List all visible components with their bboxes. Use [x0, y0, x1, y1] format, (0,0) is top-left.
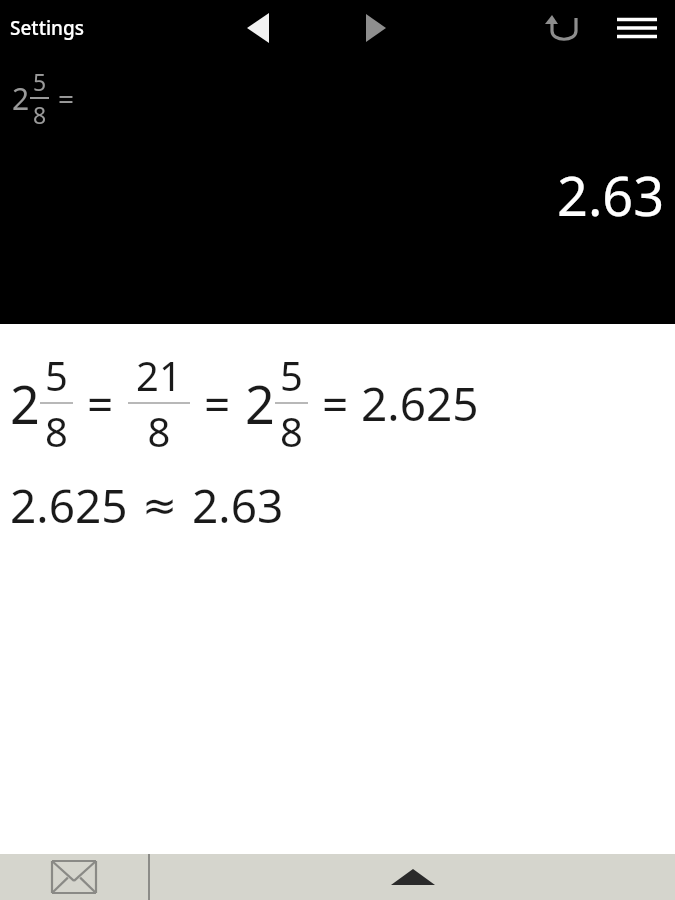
staticText: 2.63: [557, 158, 665, 232]
staticText: 8: [40, 404, 73, 458]
staticText: ≈: [142, 481, 178, 530]
staticText: 8: [128, 404, 190, 458]
staticText: =: [322, 372, 349, 435]
staticText: 5: [40, 348, 73, 402]
button[interactable]: Settings: [4, 9, 90, 47]
staticText: Settings: [10, 15, 84, 41]
staticText: 2.625: [10, 474, 128, 537]
staticText: 2.63: [192, 474, 284, 537]
button[interactable]: Next: [350, 2, 402, 54]
staticText: 8: [275, 404, 308, 458]
staticText: =: [87, 372, 114, 435]
staticText: 2.625: [361, 372, 479, 435]
button[interactable]: Email: [0, 854, 148, 900]
button[interactable]: Previous: [232, 2, 284, 54]
button[interactable]: Undo: [538, 2, 590, 54]
staticText: =: [58, 79, 75, 117]
staticText: 2: [245, 368, 275, 439]
staticText: 8: [30, 99, 49, 130]
staticText: 5: [275, 348, 308, 402]
staticText: =: [204, 372, 231, 435]
button[interactable]: Expand: [150, 854, 675, 900]
staticText: 2: [12, 78, 30, 119]
staticText: 21: [128, 348, 190, 402]
staticText: 5: [30, 66, 49, 97]
staticText: 2: [10, 368, 40, 439]
button[interactable]: Menu: [611, 2, 663, 54]
